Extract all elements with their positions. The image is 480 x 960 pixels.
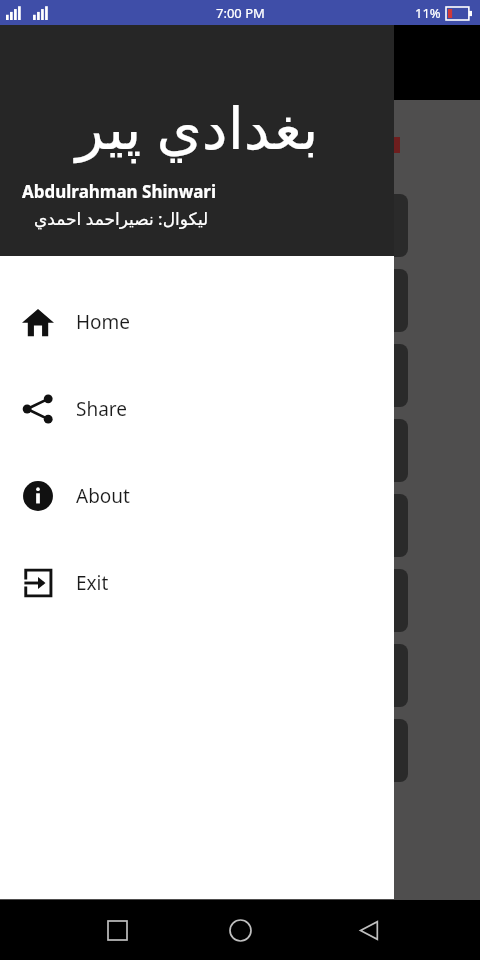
button[interactable]: Back xyxy=(346,908,390,952)
button[interactable] xyxy=(16,644,408,707)
other: About xyxy=(21,479,55,513)
button[interactable]: About xyxy=(0,452,394,539)
button[interactable]: Home xyxy=(218,908,262,952)
other: Share xyxy=(21,392,55,426)
staticText: Home xyxy=(76,309,131,335)
button[interactable]: Recent apps xyxy=(95,908,139,952)
staticText: 7:00 PM xyxy=(216,4,265,22)
staticText: Abdulrahman Shinwari xyxy=(22,180,217,203)
button[interactable] xyxy=(16,419,408,482)
other: Home xyxy=(21,305,55,339)
button[interactable] xyxy=(16,494,408,557)
staticText: Exit xyxy=(76,570,109,596)
button[interactable]: Exit xyxy=(0,539,394,626)
staticText: Share xyxy=(76,396,128,422)
staticText: ليکوال: نصيراحمد احمدي xyxy=(34,207,209,230)
staticText: بغدادي پير xyxy=(12,87,382,166)
button[interactable] xyxy=(16,194,408,257)
button[interactable]: Home xyxy=(0,278,394,365)
button[interactable] xyxy=(16,569,408,632)
staticText: About xyxy=(76,483,130,509)
button[interactable] xyxy=(16,269,408,332)
button[interactable] xyxy=(16,344,408,407)
button[interactable] xyxy=(16,719,408,782)
other: Exit xyxy=(21,566,55,600)
button[interactable]: Share xyxy=(0,365,394,452)
staticText: 11% xyxy=(415,4,441,22)
